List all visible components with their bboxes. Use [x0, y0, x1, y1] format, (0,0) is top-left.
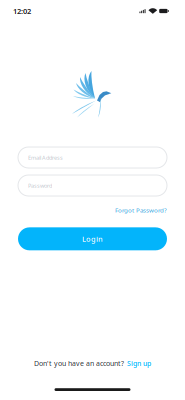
staticText: Email Address — [28, 154, 63, 161]
button[interactable]: Sign up — [127, 358, 151, 368]
staticText: Sign up — [127, 358, 151, 368]
staticText: Password — [28, 182, 52, 189]
staticText: Forgot Password? — [115, 206, 167, 214]
button[interactable]: Login — [18, 227, 167, 250]
staticText: 12:02 — [13, 6, 31, 16]
staticText: Login — [82, 234, 103, 244]
staticText: Don't you have an account? — [34, 358, 124, 368]
button[interactable]: Forgot Password? — [115, 206, 167, 214]
